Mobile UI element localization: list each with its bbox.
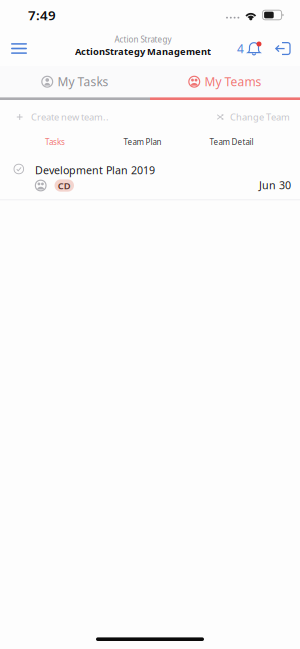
button[interactable]: Tasks	[24, 133, 86, 151]
button[interactable]: Log out	[275, 34, 291, 62]
staticText: 7:49	[28, 6, 56, 24]
staticText: 4	[237, 40, 244, 56]
button[interactable]: Team Plan	[108, 133, 176, 151]
staticText: CD	[58, 179, 71, 192]
button[interactable]: Change Team	[150, 107, 300, 127]
staticText: Action Strategy	[114, 34, 171, 45]
staticText: Change Team	[230, 111, 290, 123]
button[interactable]: My Teams	[150, 66, 300, 100]
button[interactable]: Team Detail	[196, 133, 266, 151]
staticText: Team Plan	[123, 137, 161, 147]
staticText: Tasks	[45, 137, 65, 147]
button[interactable]: Notifications	[237, 34, 262, 62]
button[interactable]: Create new team..	[0, 107, 150, 127]
staticText: ActionStrategy Management	[75, 45, 211, 57]
staticText: My Teams	[204, 74, 261, 90]
button[interactable]: My Tasks	[0, 66, 150, 100]
button[interactable]: Development Plan 2019	[0, 157, 300, 199]
staticText: My Tasks	[57, 74, 108, 90]
button[interactable]: Menu	[5, 34, 33, 62]
staticText: Development Plan 2019	[35, 163, 155, 177]
staticText: Create new team..	[31, 111, 109, 123]
staticText: Team Detail	[209, 137, 253, 147]
staticText: Jun 30	[259, 178, 291, 192]
